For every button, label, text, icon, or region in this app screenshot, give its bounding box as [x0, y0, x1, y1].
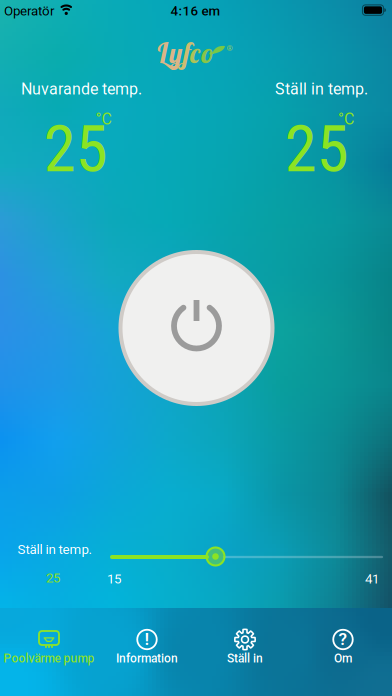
staticText: °C: [95, 110, 111, 128]
staticText: 41: [365, 571, 379, 587]
staticText: °C: [338, 110, 354, 128]
staticText: 15: [107, 571, 121, 587]
staticText: !: [144, 629, 149, 649]
button[interactable]: Temperature slider: [205, 546, 225, 566]
staticText: Poolvärme pump: [3, 652, 94, 665]
button[interactable]: !: [98, 608, 196, 696]
staticText: Ställ in temp.: [17, 542, 92, 557]
staticText: ?: [338, 629, 347, 649]
staticText: 4:16 em: [170, 3, 220, 19]
staticText: 25: [43, 111, 107, 187]
button[interactable]: Ställ in: [196, 608, 294, 696]
staticText: o: [201, 35, 215, 70]
staticText: 25: [46, 570, 60, 586]
staticText: Ställ in temp.: [275, 80, 368, 98]
staticText: Operatör: [4, 3, 55, 19]
staticText: ®: [226, 44, 232, 53]
staticText: Ly: [156, 35, 183, 70]
staticText: f: [183, 35, 190, 70]
staticText: Nuvarande temp.: [21, 80, 142, 98]
button[interactable]: Power: [118, 250, 274, 406]
button[interactable]: ?: [294, 608, 392, 696]
staticText: 25: [284, 111, 348, 187]
button[interactable]: Poolvärme pump: [0, 608, 98, 696]
staticText: Om: [334, 652, 352, 665]
staticText: Ställ in: [227, 652, 263, 665]
staticText: Information: [116, 652, 178, 665]
staticText: c: [190, 35, 201, 70]
